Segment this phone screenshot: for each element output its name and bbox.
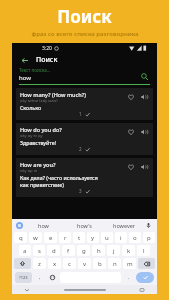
button[interactable]: r <box>59 232 71 243</box>
button[interactable]: Hide keyboard <box>24 287 30 293</box>
staticText: 2 <box>79 146 82 152</box>
staticText: d <box>52 247 56 255</box>
button[interactable]: Favorite <box>125 126 136 137</box>
button[interactable]: ?123 <box>15 272 32 283</box>
button[interactable]: m <box>123 258 136 269</box>
button[interactable]: Play sound <box>138 161 149 172</box>
staticText: y <box>91 234 95 242</box>
staticText: how <box>38 222 49 229</box>
staticText: p <box>147 234 151 242</box>
button[interactable]: i <box>115 232 127 243</box>
staticText: b <box>98 260 102 268</box>
staticText: Поиск <box>36 55 58 65</box>
button[interactable]: Google <box>16 222 23 229</box>
button[interactable]: how's <box>64 219 104 231</box>
staticText: . <box>128 274 130 281</box>
staticText: x <box>53 260 57 268</box>
button[interactable]: e <box>44 232 57 243</box>
button[interactable]: however <box>104 219 144 231</box>
staticText: How do you do? <box>20 126 62 133</box>
staticText: r <box>64 234 67 242</box>
button[interactable]: how <box>23 219 64 231</box>
button[interactable]: Favorite <box>125 161 136 172</box>
button[interactable]: Play sound <box>138 126 149 137</box>
staticText: z <box>38 260 41 268</box>
button[interactable]: j <box>107 245 120 256</box>
staticText: t <box>78 234 81 242</box>
staticText: How are you? <box>20 161 56 168</box>
button[interactable]: Back <box>18 54 30 66</box>
staticText: хáу ду ю ду <box>20 133 43 139</box>
staticText: h <box>97 247 101 255</box>
button[interactable]: v <box>78 258 91 269</box>
button[interactable]: u <box>101 232 113 243</box>
button[interactable]: Emoji <box>46 271 59 284</box>
staticText: o <box>133 234 137 242</box>
staticText: Сколько <box>20 104 42 111</box>
staticText: j <box>113 247 115 255</box>
staticText: Как дела? (часто используется <box>20 174 98 181</box>
staticText: Здравствуйте! <box>20 139 57 146</box>
staticText: m <box>127 260 133 268</box>
staticText: 1 <box>79 111 82 117</box>
button[interactable]: p <box>143 232 155 243</box>
staticText: n <box>113 260 117 268</box>
button[interactable]: Shift <box>14 258 31 269</box>
staticText: хáу мэ́ни (хáу мач) <box>20 98 58 104</box>
button[interactable]: Favorite <box>125 91 136 102</box>
button[interactable]: Backspace <box>138 258 155 269</box>
button[interactable]: s <box>33 245 45 256</box>
button[interactable]: a <box>19 245 31 256</box>
button[interactable]: x <box>48 258 61 269</box>
staticText: q <box>19 234 23 242</box>
button[interactable]: z <box>33 258 46 269</box>
button[interactable]: y <box>87 232 99 243</box>
staticText: i <box>120 234 122 242</box>
staticText: 3 <box>79 188 82 194</box>
staticText: how <box>19 74 31 82</box>
staticText: фраз со всего списка разговорника <box>31 30 139 38</box>
staticText: k <box>127 247 131 255</box>
staticText: ?123 <box>19 275 28 280</box>
button[interactable]: How are you? <box>16 158 153 197</box>
button[interactable]: . <box>122 271 135 284</box>
button[interactable]: Play sound <box>138 91 149 102</box>
button[interactable]: l <box>137 245 150 256</box>
staticText: e <box>49 234 53 242</box>
staticText: 3:20 <box>42 45 52 52</box>
button[interactable]: d <box>47 245 60 256</box>
staticText: l <box>143 247 145 255</box>
button[interactable]: Keyboard settings <box>139 287 145 293</box>
button[interactable]: g <box>77 245 90 256</box>
staticText: c <box>68 260 71 268</box>
button[interactable]: b <box>93 258 106 269</box>
button[interactable]: o <box>129 232 141 243</box>
button[interactable]: c <box>63 258 76 269</box>
staticText: f <box>67 247 70 255</box>
button[interactable]: Enter <box>136 272 154 283</box>
button[interactable]: t <box>73 232 85 243</box>
staticText: w <box>33 234 38 242</box>
button[interactable]: w <box>29 232 42 243</box>
button[interactable]: Voice input <box>144 221 153 230</box>
button[interactable]: q <box>14 232 27 243</box>
staticText: Текст поиска... <box>19 67 51 73</box>
button[interactable]: How do you do? <box>16 123 153 155</box>
button[interactable]: , <box>33 271 46 284</box>
button[interactable]: h <box>92 245 105 256</box>
staticText: How many? (How much?) <box>20 91 86 98</box>
button[interactable]: f <box>62 245 75 256</box>
staticText: , <box>39 274 41 281</box>
staticText: how's <box>77 222 92 229</box>
button[interactable]: How many? (How much?) <box>16 88 153 120</box>
button[interactable]: Search <box>138 70 150 82</box>
button[interactable]: n <box>108 258 121 269</box>
staticText: как приветствие) <box>20 181 64 188</box>
staticText: Поиск <box>57 5 112 28</box>
button[interactable]: k <box>122 245 135 256</box>
staticText: G <box>18 223 21 228</box>
staticText: v <box>83 260 87 268</box>
staticText: хáу ар ю <box>20 168 38 174</box>
staticText: however <box>113 222 136 229</box>
